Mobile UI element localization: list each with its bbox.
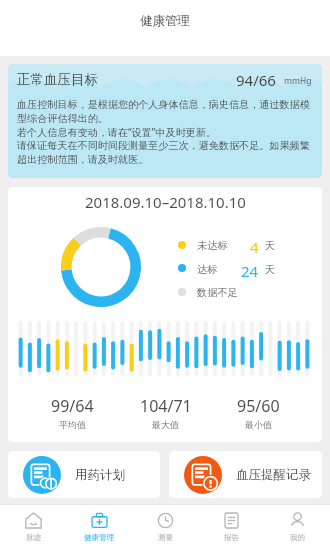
staticText: 测量 [158, 533, 173, 542]
staticText: 94/66 [236, 70, 276, 90]
staticText: mmHg [284, 75, 312, 87]
button[interactable]: 报告 [198, 504, 264, 550]
staticText: 平均值 [59, 419, 86, 430]
staticText: 用药计划 [75, 467, 125, 483]
staticText: 天 [265, 263, 276, 276]
staticText: 24 [241, 261, 259, 281]
staticText: 健康管理 [140, 13, 190, 29]
button[interactable]: 测量 [132, 504, 198, 550]
staticText: 血压提醒记录 [236, 467, 311, 483]
staticText: 达标 [197, 263, 218, 276]
staticText: 最大值 [152, 419, 179, 430]
staticText: 若个人信息有变动，请在“设置”中及时更新。 [17, 125, 217, 139]
staticText: 99/64 [51, 395, 94, 417]
button[interactable]: 健康管理 [66, 504, 132, 550]
staticText: 最小值 [245, 419, 272, 430]
button[interactable]: 我的 [264, 504, 330, 550]
staticText: 健康管理 [84, 533, 114, 542]
staticText: 血压控制目标，是根据您的个人身体信息，病史信息，通过数据模型综合评估得出的。 [17, 98, 313, 125]
staticText: 95/60 [237, 395, 280, 417]
staticText: 正常血压目标 [17, 71, 98, 88]
staticText: 104/71 [140, 395, 192, 417]
staticText: 未达标 [197, 239, 228, 252]
button[interactable]: 血压提醒记录 [169, 451, 322, 498]
staticText: 4 [250, 237, 259, 257]
staticText: 脉迹 [26, 533, 41, 542]
button[interactable]: 脉迹 [0, 504, 66, 550]
staticText: 天 [265, 239, 276, 252]
staticText: 报告 [224, 533, 239, 542]
staticText: 数据不足 [197, 286, 238, 299]
staticText: 2018.09.10–2018.10.10 [85, 192, 246, 212]
staticText: 请保证每天在不同时间段测量至少三次，避免数据不足。如果频繁超出控制范围，请及时就… [17, 139, 313, 166]
staticText: 我的 [290, 533, 305, 542]
button[interactable]: 用药计划 [8, 451, 160, 498]
